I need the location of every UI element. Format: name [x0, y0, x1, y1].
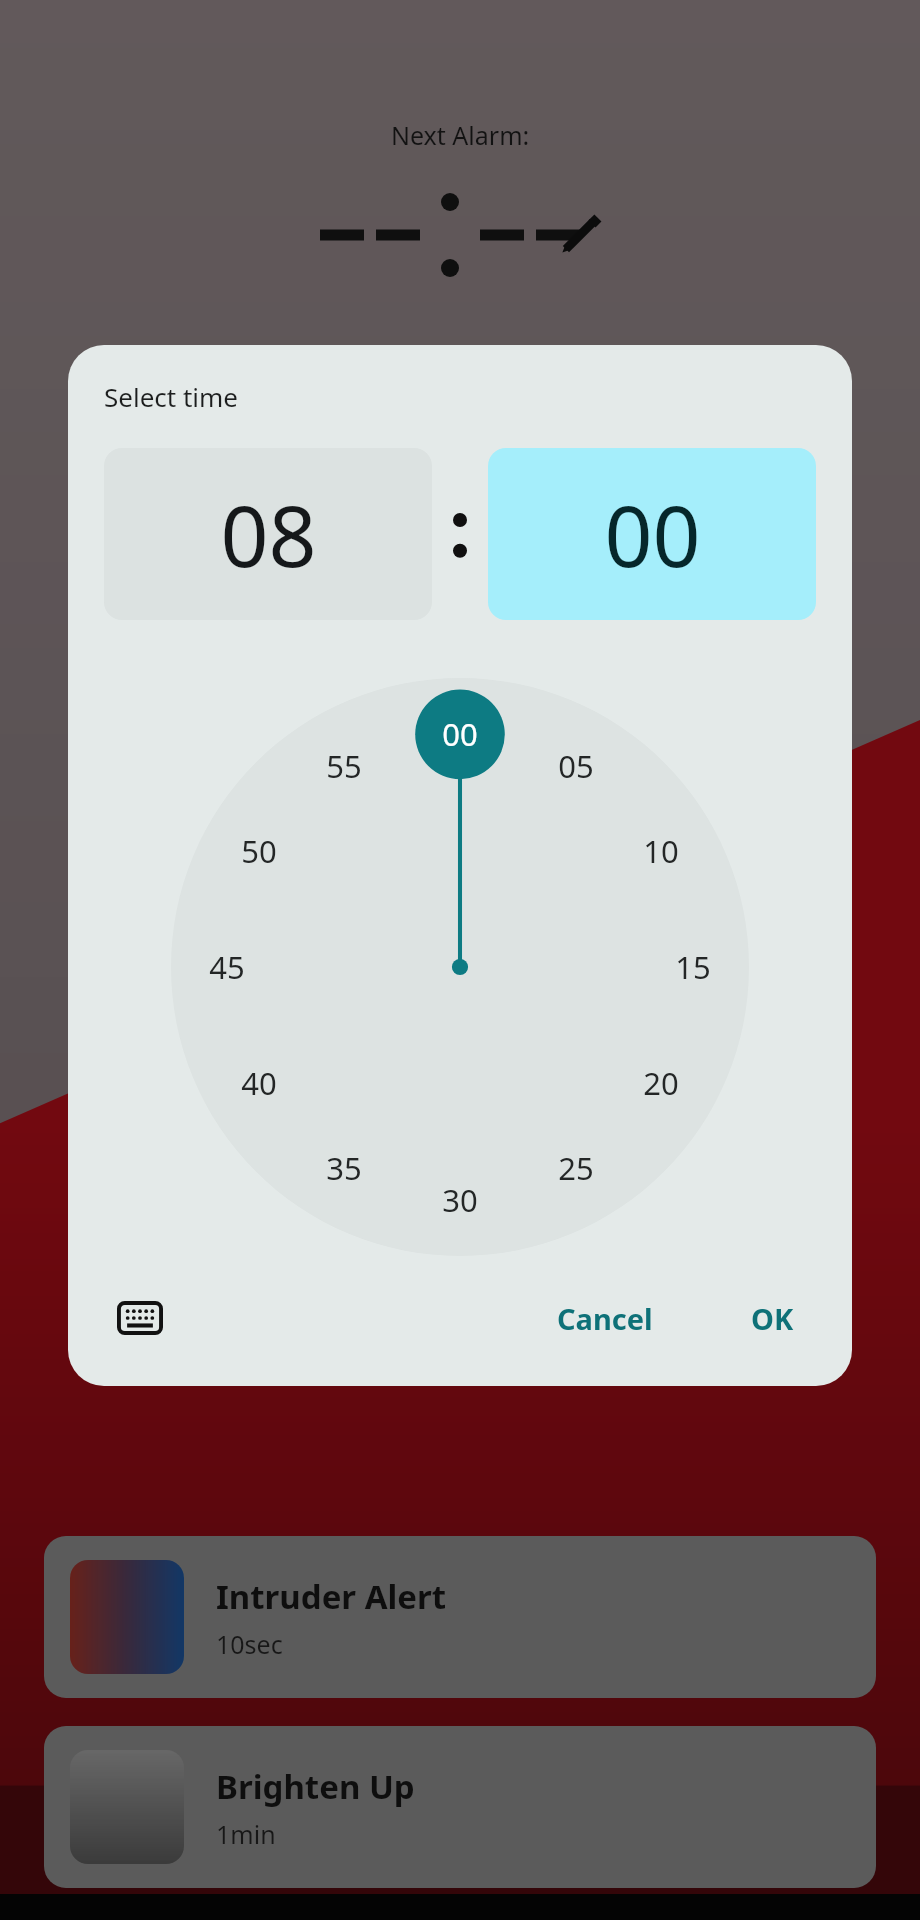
button[interactable]: 50 [222, 814, 296, 888]
button[interactable]: 08 [104, 448, 432, 620]
staticText: 10sec [216, 1627, 283, 1661]
staticText: 45 [209, 946, 245, 988]
staticText: 10 [643, 830, 679, 872]
button[interactable]: 55 [307, 729, 381, 803]
button[interactable]: 00 [488, 448, 816, 620]
staticText: Select time [104, 379, 239, 414]
staticText: Brighten Up [216, 1764, 415, 1809]
button[interactable]: 20 [624, 1046, 698, 1120]
staticText: 00 [442, 713, 478, 755]
staticText: 08 [220, 477, 317, 591]
button[interactable]: OK [729, 1285, 816, 1352]
staticText: 30 [442, 1179, 478, 1221]
button[interactable]: 35 [307, 1131, 381, 1205]
staticText: 00 [604, 477, 701, 591]
button[interactable]: Intruder Alert [44, 1536, 876, 1698]
staticText: 05 [558, 745, 594, 787]
staticText: 20 [643, 1062, 679, 1104]
staticText: 55 [326, 745, 362, 787]
button[interactable]: 30 [423, 1163, 497, 1237]
staticText: 25 [558, 1147, 594, 1189]
button[interactable]: 40 [222, 1046, 296, 1120]
staticText: 15 [675, 946, 711, 988]
button[interactable]: Edit alarm time [314, 200, 607, 270]
button[interactable]: 05 [539, 729, 613, 803]
staticText: Next Alarm: [391, 118, 530, 152]
staticText: OK [751, 1299, 794, 1338]
button[interactable]: Switch to text input [104, 1282, 176, 1354]
staticText: Intruder Alert [216, 1574, 447, 1619]
staticText: Cancel [557, 1299, 653, 1338]
staticText: 35 [326, 1147, 362, 1189]
button[interactable]: Edit alarm time [553, 208, 607, 262]
button[interactable]: 10 [624, 814, 698, 888]
button[interactable]: Brighten Up [44, 1726, 876, 1888]
staticText: 50 [241, 830, 277, 872]
button[interactable]: 15 [656, 930, 730, 1004]
staticText: 1min [216, 1817, 276, 1851]
button[interactable]: 45 [190, 930, 264, 1004]
staticText: 40 [241, 1062, 277, 1104]
button[interactable]: 00 [423, 697, 497, 771]
button[interactable]: Cancel [535, 1285, 675, 1352]
button[interactable]: 25 [539, 1131, 613, 1205]
